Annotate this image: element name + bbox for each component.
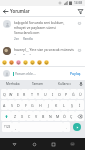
- button[interactable]: Yorum ekle...: [13, 71, 69, 76]
- button[interactable]: Z: [11, 111, 19, 121]
- button[interactable]: A: [1, 100, 8, 110]
- button[interactable]: O: [56, 89, 63, 99]
- button[interactable]: H: [36, 100, 44, 110]
- button[interactable]: Ö: [61, 111, 68, 121]
- button[interactable]: R: [21, 89, 28, 99]
- staticText: O: [58, 92, 61, 97]
- button[interactable]: E: [14, 89, 21, 99]
- staticText: Ö: [63, 114, 66, 119]
- button[interactable]: İ: [76, 100, 84, 110]
- button[interactable]: V: [33, 111, 40, 121]
- button[interactable]: Backspace: [75, 111, 84, 121]
- staticText: X: [21, 114, 24, 119]
- staticText: Ğ: [72, 92, 75, 97]
- staticText: F: [25, 103, 27, 108]
- button[interactable]: G: [29, 100, 36, 110]
- button[interactable]: K: [52, 100, 60, 110]
- button[interactable]: Ü: [77, 89, 84, 99]
- button[interactable]: Like: [76, 20, 82, 26]
- button[interactable]: P: [63, 89, 70, 99]
- staticText: hazzeyl__ Yine size ya sıracak münevis: [14, 47, 74, 52]
- button[interactable]: Voice input: [77, 80, 85, 88]
- button[interactable]: Home: [29, 139, 39, 149]
- staticText: P: [65, 92, 68, 97]
- button[interactable]: Emoji: [37, 60, 42, 65]
- button[interactable]: kalpgold Sonunda seni buldum, nihayet ve…: [0, 17, 85, 44]
- button[interactable]: Emoji: [2, 60, 7, 65]
- staticText: B: [42, 114, 45, 119]
- staticText: kalpgold Sonunda seni buldum, nihayet ve…: [14, 20, 74, 35]
- button[interactable]: Keyboard: [68, 140, 76, 148]
- button[interactable]: Emoji: [44, 60, 49, 65]
- button[interactable]: U: [42, 89, 49, 99]
- button[interactable]: Recents: [48, 139, 58, 149]
- staticText: Merhaba: [6, 82, 20, 86]
- button[interactable]: Ç: [68, 111, 75, 121]
- button[interactable]: Emoji: [23, 60, 28, 65]
- button[interactable]: Merhaba: [0, 80, 25, 88]
- button[interactable]: N: [47, 111, 54, 121]
- button[interactable]: Ş: [68, 100, 76, 110]
- button[interactable]: Back: [0, 6, 10, 16]
- staticText: Q: [3, 92, 6, 97]
- button[interactable]: Emoji: [9, 60, 14, 65]
- staticText: 2sn: [14, 54, 20, 55]
- button[interactable]: Q: [1, 89, 7, 99]
- button[interactable]: Y: [35, 89, 42, 99]
- button[interactable]: ,: [12, 122, 19, 132]
- staticText: Ü: [79, 92, 82, 97]
- button[interactable]: Send: [73, 123, 81, 131]
- staticText: H: [39, 103, 42, 108]
- button[interactable]: B: [40, 111, 47, 121]
- staticText: Z: [14, 114, 17, 119]
- button[interactable]: Kullanıcı: [51, 80, 77, 88]
- button[interactable]: Paylaş: [69, 71, 82, 76]
- button[interactable]: [1, 111, 11, 121]
- staticText: 14:58: [74, 1, 83, 5]
- button[interactable]: Emoji: [16, 60, 21, 65]
- staticText: Yorumlar: [10, 8, 30, 14]
- button[interactable]: T: [28, 89, 35, 99]
- staticText: U: [44, 92, 47, 97]
- button[interactable]: hazzeyl__ Yine size ya sıracak münevis: [0, 44, 85, 58]
- button[interactable]: Yanıtla: [23, 54, 33, 55]
- button[interactable]: Tamam: [25, 80, 51, 88]
- staticText: Tamam: [32, 82, 44, 86]
- button[interactable]: F: [22, 100, 29, 110]
- staticText: .: [66, 125, 67, 130]
- button[interactable]: .: [63, 122, 70, 132]
- staticText: L: [63, 103, 65, 108]
- staticText: Yorum ekle...: [15, 71, 36, 76]
- staticText: R: [23, 92, 26, 97]
- button[interactable]: Back: [9, 139, 19, 149]
- button[interactable]: Ğ: [70, 89, 77, 99]
- button[interactable]: W: [7, 89, 14, 99]
- staticText: N: [49, 114, 52, 119]
- button[interactable]: Yanıtla: [23, 37, 33, 41]
- staticText: I: [52, 92, 54, 97]
- button[interactable]: Filter: [75, 6, 85, 16]
- staticText: W: [9, 92, 13, 97]
- staticText: D: [17, 103, 20, 108]
- button[interactable]: J: [44, 100, 52, 110]
- staticText: E: [17, 92, 19, 97]
- button[interactable]: X: [19, 111, 26, 121]
- staticText: ?123: [4, 125, 11, 129]
- button[interactable]: M: [54, 111, 61, 121]
- staticText: Y: [37, 92, 40, 97]
- button[interactable]: C: [26, 111, 33, 121]
- button[interactable]: D: [15, 100, 22, 110]
- staticText: G: [31, 103, 34, 108]
- button[interactable]: I: [49, 89, 56, 99]
- button[interactable]: S: [8, 100, 15, 110]
- staticText: Ş: [71, 103, 73, 108]
- staticText: J: [48, 103, 49, 108]
- button[interactable]: Emoji: [30, 60, 35, 65]
- staticText: 2sn: [14, 37, 20, 41]
- button[interactable]: ?123: [2, 122, 12, 132]
- button[interactable]: L: [60, 100, 68, 110]
- button[interactable]: Like: [76, 47, 82, 53]
- staticText: Ç: [70, 114, 73, 119]
- staticText: T: [31, 92, 33, 97]
